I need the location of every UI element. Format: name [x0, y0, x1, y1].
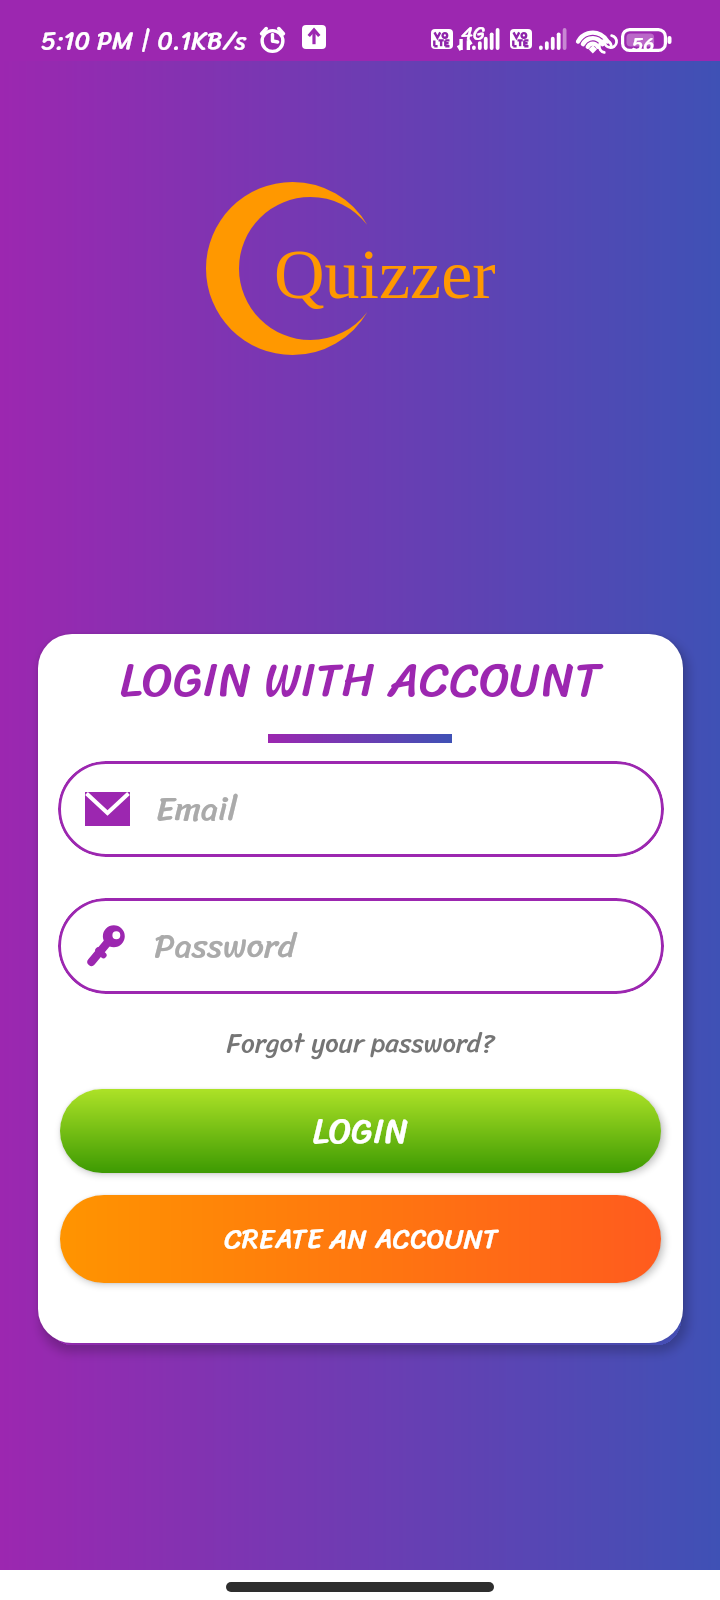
button[interactable]: Password — [58, 898, 664, 994]
staticText: 4G — [461, 17, 485, 51]
button[interactable]: Email — [58, 761, 664, 857]
staticText: LOGIN WITH ACCOUNT — [38, 637, 683, 722]
staticText: Email — [156, 779, 238, 839]
staticText: LOGIN — [312, 1100, 409, 1162]
button[interactable]: Forgot your password? — [38, 1019, 683, 1067]
staticText: Quizzer — [274, 236, 496, 314]
button[interactable]: LOGIN — [60, 1089, 661, 1173]
staticText: 5:10 PM | 0.1KB/s — [41, 18, 247, 62]
staticText: 56 — [632, 28, 655, 62]
staticText: Password — [154, 916, 296, 976]
button[interactable]: CREATE AN ACCOUNT — [60, 1195, 661, 1283]
staticText: CREATE AN ACCOUNT — [224, 1214, 498, 1264]
